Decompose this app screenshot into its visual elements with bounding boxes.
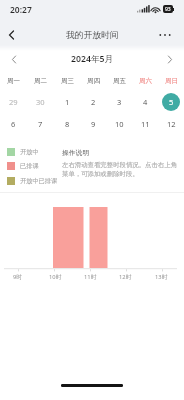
staticText: 周日 [165, 77, 178, 85]
staticText: 30 [36, 97, 45, 107]
staticText: 12时 [119, 273, 132, 281]
staticText: 11时 [84, 273, 97, 281]
staticText: 周三 [61, 77, 74, 85]
staticText: 9 [91, 119, 96, 129]
staticText: 10时 [49, 273, 62, 281]
button[interactable]: 29 [0, 92, 27, 111]
staticText: 周六 [139, 77, 152, 85]
staticText: 周四 [87, 77, 100, 85]
staticText: 10 [115, 119, 124, 129]
button[interactable]: 9 [80, 116, 106, 132]
staticText: 13时 [155, 273, 168, 281]
staticText: 2024年5月 [71, 53, 114, 65]
staticText: 93 [165, 6, 171, 13]
staticText: 4 [143, 97, 148, 107]
staticText: 2 [91, 97, 96, 107]
staticText: 5 [169, 97, 174, 107]
button[interactable] [154, 27, 176, 43]
button[interactable]: 10 [106, 116, 132, 132]
staticText: 菜单，可添加或删除时段。 [62, 170, 139, 178]
staticText: 8 [65, 119, 70, 129]
button[interactable]: 1 [54, 92, 80, 111]
staticText: 周二 [34, 77, 47, 85]
button[interactable]: 12 [158, 116, 184, 132]
button[interactable]: 5 [158, 92, 184, 111]
button[interactable] [162, 51, 178, 67]
staticText: 3 [117, 97, 122, 107]
staticText: 1 [65, 97, 70, 107]
staticText: 周五 [113, 77, 126, 85]
staticText: 20:27 [10, 4, 32, 16]
staticText: 7 [38, 119, 43, 129]
staticText: 开放中已排课 [20, 177, 58, 185]
staticText: 29 [9, 97, 18, 107]
button[interactable]: 6 [0, 116, 27, 132]
staticText: 11 [141, 119, 150, 129]
button[interactable]: 3 [106, 92, 132, 111]
button[interactable]: 7 [27, 116, 54, 132]
staticText: 操作说明 [62, 148, 90, 157]
button[interactable]: 8 [54, 116, 80, 132]
staticText: 我的开放时间 [66, 30, 119, 41]
staticText: 开放中 [20, 148, 39, 156]
button[interactable]: 4 [132, 92, 158, 111]
button[interactable]: 11 [132, 116, 158, 132]
staticText: 左右滑动查看完整时段情况。点击右上角 [62, 161, 178, 169]
staticText: 12 [167, 119, 176, 129]
button[interactable]: 30 [27, 92, 54, 111]
staticText: 9时 [13, 273, 23, 281]
button[interactable] [2, 26, 20, 44]
button[interactable] [6, 51, 22, 67]
button[interactable]: 2 [80, 92, 106, 111]
staticText: 6 [11, 119, 16, 129]
staticText: 周一 [7, 77, 20, 85]
staticText: 已排课 [20, 162, 39, 170]
